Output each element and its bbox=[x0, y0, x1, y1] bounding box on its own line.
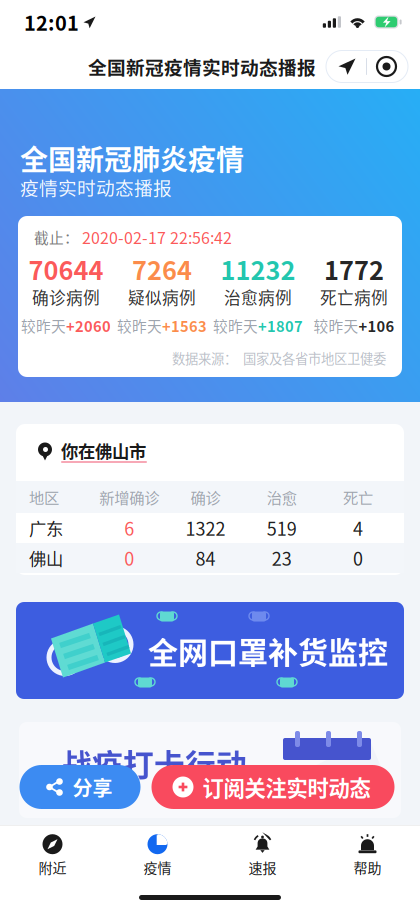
staticText: 佛山 bbox=[29, 545, 63, 571]
staticText: 附近 bbox=[38, 857, 66, 877]
button[interactable]: 附近 bbox=[0, 833, 105, 876]
button[interactable]: 速报 bbox=[210, 833, 315, 876]
staticText: 疑似病例 bbox=[128, 285, 196, 309]
staticText: 订阅关注实时动态 bbox=[202, 772, 370, 802]
staticText: 治愈病例 bbox=[224, 285, 292, 309]
staticText: 6 bbox=[124, 515, 134, 541]
staticText: 1772 bbox=[324, 251, 384, 287]
staticText: 数据来源： bbox=[172, 348, 237, 368]
staticText: 0 bbox=[353, 545, 363, 571]
staticText: 84 bbox=[195, 545, 215, 571]
staticText: 广东 bbox=[29, 515, 63, 541]
staticText: 治愈 bbox=[267, 486, 297, 508]
staticText: 2020-02-17 22:56:42 bbox=[82, 225, 232, 249]
button[interactable]: 订阅关注实时动态 bbox=[151, 765, 394, 809]
staticText: 速报 bbox=[248, 857, 276, 877]
staticText: 全国新冠肺炎疫情 bbox=[20, 138, 244, 178]
staticText: 疫情 bbox=[143, 857, 171, 877]
staticText: 截止： bbox=[34, 226, 79, 248]
staticText: 7264 bbox=[132, 251, 192, 287]
staticText: 70644 bbox=[28, 251, 103, 287]
button[interactable]: 分享 bbox=[19, 765, 140, 809]
staticText: 疫情实时动态播报 bbox=[20, 173, 172, 200]
staticText: 11232 bbox=[220, 251, 295, 287]
button[interactable]: 更多 bbox=[367, 50, 406, 82]
staticText: +1563 bbox=[162, 315, 207, 336]
staticText: 你在佛山市 bbox=[61, 438, 146, 463]
staticText: 519 bbox=[267, 515, 297, 541]
staticText: 死亡 bbox=[343, 486, 373, 508]
staticText: 23 bbox=[272, 545, 292, 571]
staticText: 确诊病例 bbox=[32, 285, 100, 309]
button[interactable]: 疫情 bbox=[105, 833, 210, 876]
staticText: 全国新冠疫情实时动态播报 bbox=[88, 53, 316, 80]
button[interactable]: 全网口罩补货监控 bbox=[16, 602, 404, 699]
staticText: 帮助 bbox=[353, 857, 381, 877]
staticText: 较昨天 bbox=[117, 315, 162, 336]
staticText: 死亡病例 bbox=[320, 285, 388, 309]
button[interactable]: 定位 bbox=[328, 50, 366, 82]
button[interactable]: 战疫打卡行动 bbox=[19, 722, 401, 818]
staticText: 国家及各省市地区卫健委 bbox=[243, 348, 386, 368]
staticText: 全网口罩补货监控 bbox=[148, 629, 388, 672]
staticText: 新增确诊 bbox=[99, 486, 159, 508]
staticText: 0 bbox=[124, 545, 134, 571]
staticText: 战疫打卡行动 bbox=[61, 741, 247, 785]
staticText: 12:01 bbox=[24, 7, 79, 36]
staticText: +2060 bbox=[66, 315, 111, 336]
staticText: 较昨天 bbox=[313, 315, 358, 336]
staticText: 确诊 bbox=[190, 486, 220, 508]
staticText: +106 bbox=[358, 315, 394, 336]
staticText: 1322 bbox=[185, 515, 225, 541]
staticText: 4 bbox=[353, 515, 363, 541]
staticText: 分享 bbox=[72, 772, 112, 801]
staticText: 地区 bbox=[29, 486, 59, 508]
staticText: +1807 bbox=[258, 315, 303, 336]
staticText: 较昨天 bbox=[21, 315, 66, 336]
button[interactable]: 帮助 bbox=[315, 833, 420, 876]
staticText: 较昨天 bbox=[213, 315, 258, 336]
